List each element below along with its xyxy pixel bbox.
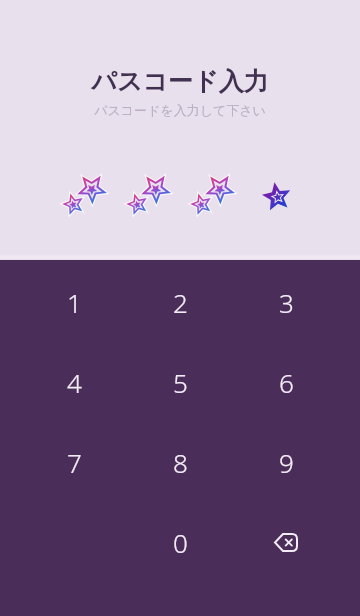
button[interactable]: 8 (127, 422, 233, 502)
staticText: 0 (173, 525, 188, 560)
staticText: 2 (173, 285, 188, 320)
button[interactable]: 1 (21, 262, 127, 342)
staticText: 3 (279, 285, 294, 320)
button[interactable]: 6 (233, 342, 339, 422)
button[interactable]: Backspace (233, 502, 339, 582)
staticText: 7 (67, 445, 82, 480)
staticText: 4 (67, 365, 82, 400)
button[interactable]: 4 (21, 342, 127, 422)
button[interactable]: 2 (127, 262, 233, 342)
staticText: パスコードを入力して下さい (94, 102, 266, 118)
button[interactable]: 3 (233, 262, 339, 342)
button[interactable]: 0 (127, 502, 233, 582)
button[interactable]: 5 (127, 342, 233, 422)
staticText: パスコード入力 (91, 66, 269, 97)
staticText: 1 (67, 285, 82, 320)
staticText: 8 (173, 445, 188, 480)
staticText: 6 (279, 365, 294, 400)
staticText: 9 (279, 445, 294, 480)
staticText: 5 (173, 365, 188, 400)
button[interactable]: 7 (21, 422, 127, 502)
button[interactable]: 9 (233, 422, 339, 502)
